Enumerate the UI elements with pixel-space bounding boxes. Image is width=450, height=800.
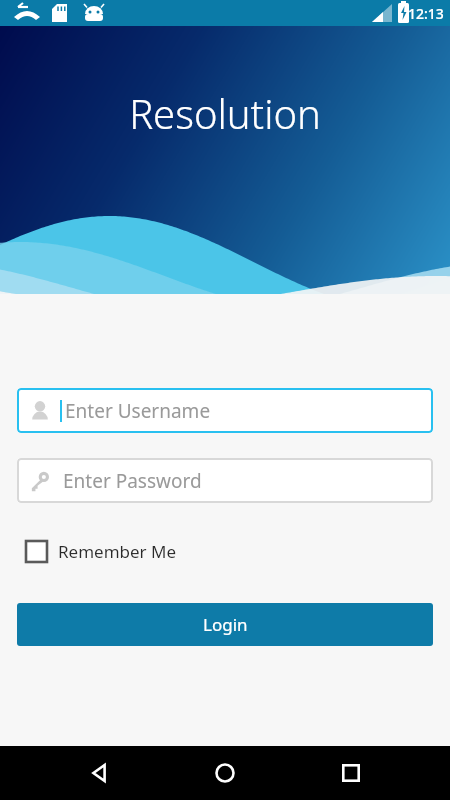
button[interactable]: Back [72,746,126,800]
button[interactable]: Remember Me [25,535,185,567]
button[interactable]: Enter Password [17,458,433,503]
button[interactable]: Enter Username [17,388,433,433]
staticText: Login [203,613,248,636]
staticText: Enter Password [63,468,202,494]
button[interactable]: Login [17,603,433,646]
staticText: Remember Me [58,540,177,563]
staticText: Enter Username [65,398,211,424]
button[interactable]: Recent apps [324,746,378,800]
staticText: Resolution [129,86,321,140]
staticText: 12:13 [408,4,444,23]
button[interactable]: Home [198,746,252,800]
